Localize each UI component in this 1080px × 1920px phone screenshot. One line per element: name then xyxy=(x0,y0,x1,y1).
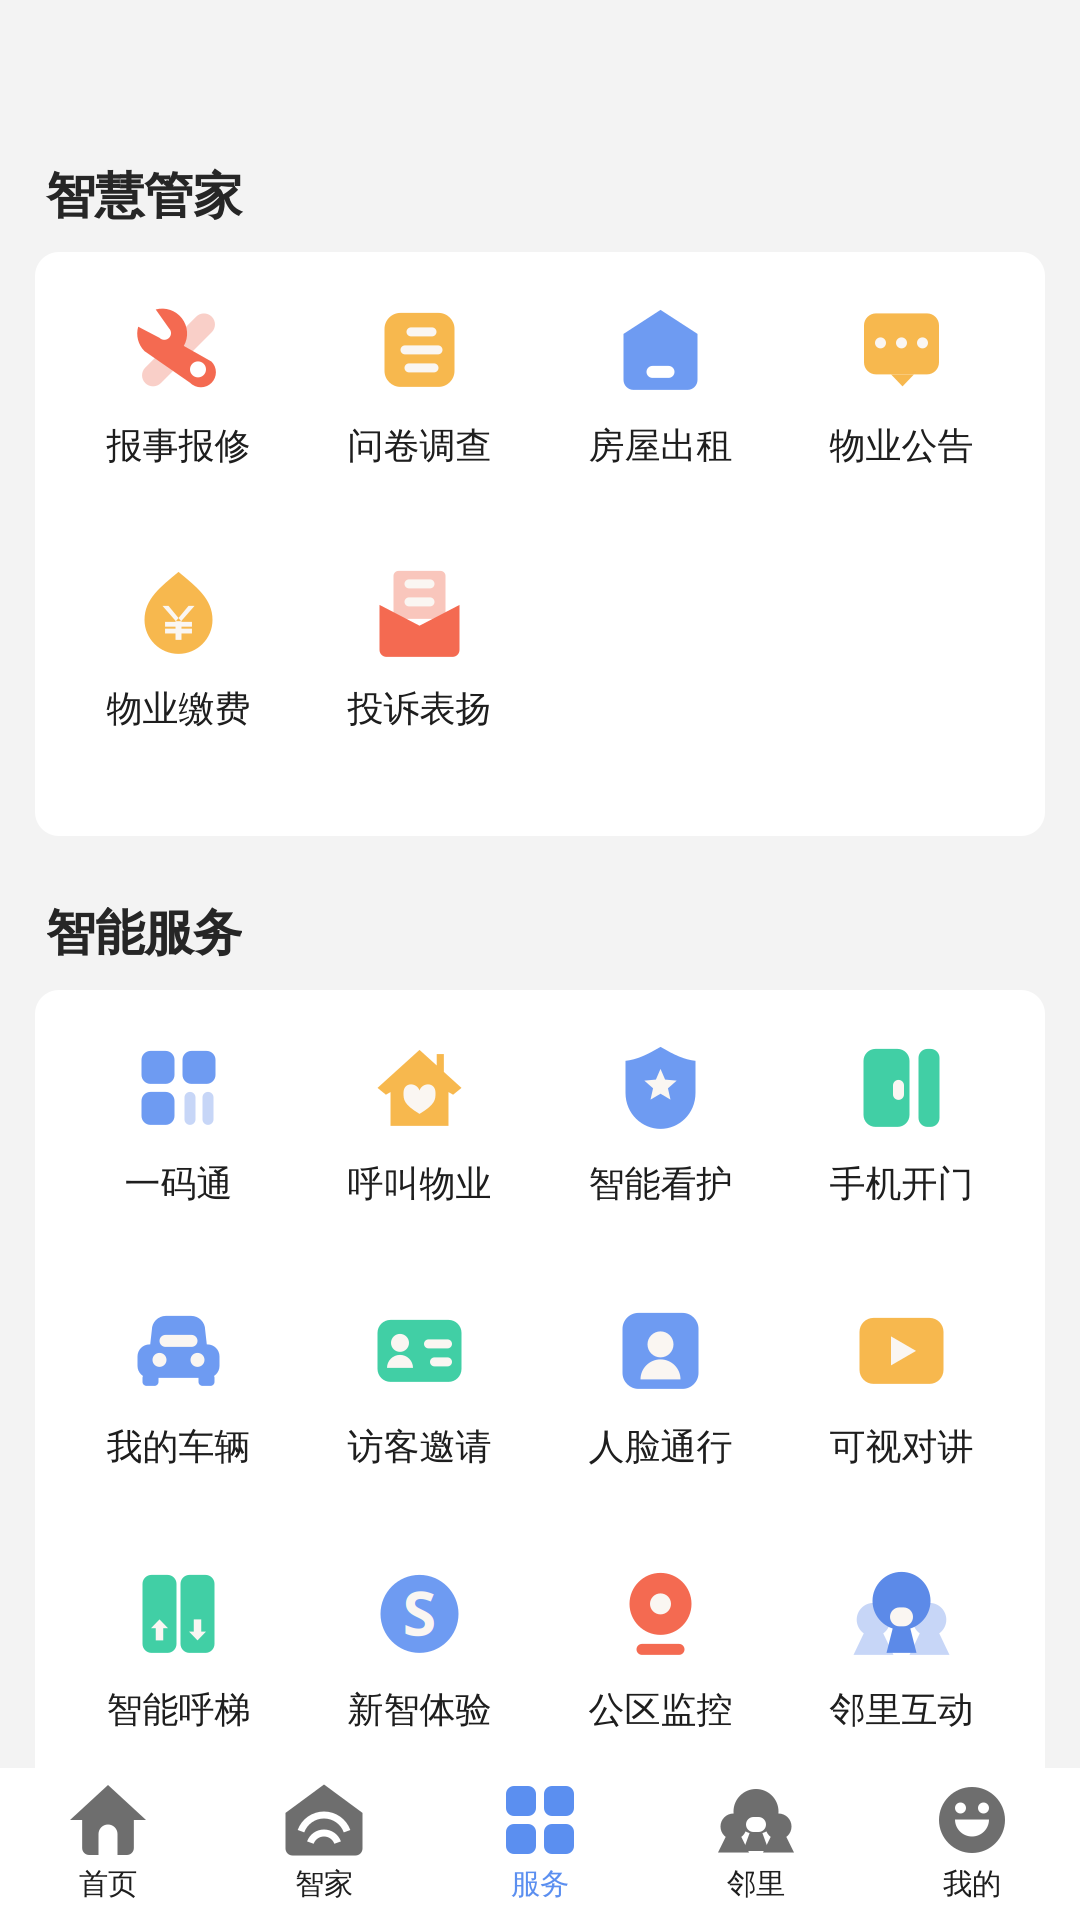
staticText: 我的车辆 xyxy=(106,1425,250,1469)
staticText: 投诉表扬 xyxy=(347,687,491,731)
staticText: 邻里互动 xyxy=(829,1688,973,1732)
button[interactable]: 智家 xyxy=(216,1768,432,1920)
staticText: 新智体验 xyxy=(347,1688,491,1732)
button[interactable]: 物业缴费 xyxy=(58,565,299,828)
button[interactable]: 报事报修 xyxy=(58,302,299,565)
staticText: 呼叫物业 xyxy=(347,1162,491,1206)
staticText: 可视对讲 xyxy=(829,1425,973,1469)
staticText: 智能看护 xyxy=(588,1162,732,1206)
button[interactable]: 邻里互动 xyxy=(781,1566,1022,1829)
staticText: 智慧管家 xyxy=(46,166,242,227)
button[interactable]: 人脸通行 xyxy=(540,1303,781,1566)
staticText: S xyxy=(402,1571,436,1653)
button[interactable]: 房屋出租 xyxy=(540,302,781,565)
button[interactable]: 呼叫物业 xyxy=(299,1040,540,1303)
button[interactable]: 一码通 xyxy=(58,1040,299,1303)
staticText: 房屋出租 xyxy=(588,424,732,468)
button[interactable]: 智能呼梯 xyxy=(58,1566,299,1829)
button[interactable]: 首页 xyxy=(0,1768,216,1920)
staticText: 我的 xyxy=(943,1866,1001,1902)
button[interactable]: 服务 xyxy=(432,1768,648,1920)
button[interactable]: 访客邀请 xyxy=(299,1303,540,1566)
button[interactable]: S xyxy=(299,1566,540,1829)
staticText: 一码通 xyxy=(124,1162,232,1206)
staticText: 访客邀请 xyxy=(347,1425,491,1469)
staticText: 智家 xyxy=(295,1866,353,1902)
button[interactable]: 投诉表扬 xyxy=(299,565,540,828)
button[interactable]: 我的车辆 xyxy=(58,1303,299,1566)
staticText: 问卷调查 xyxy=(347,424,491,468)
staticText: 智能服务 xyxy=(46,903,242,964)
button[interactable]: 公区监控 xyxy=(540,1566,781,1829)
button[interactable]: 手机开门 xyxy=(781,1040,1022,1303)
staticText: 公区监控 xyxy=(588,1688,732,1732)
staticText: 智能呼梯 xyxy=(106,1688,250,1732)
staticText: 物业公告 xyxy=(829,424,973,468)
staticText: 人脸通行 xyxy=(588,1425,732,1469)
staticText: 邻里 xyxy=(727,1866,785,1902)
staticText: 手机开门 xyxy=(829,1162,973,1206)
button[interactable]: 我的 xyxy=(864,1768,1080,1920)
staticText: 物业缴费 xyxy=(106,687,250,731)
staticText: 报事报修 xyxy=(106,424,250,468)
staticText: 首页 xyxy=(79,1866,137,1902)
button[interactable]: 可视对讲 xyxy=(781,1303,1022,1566)
button[interactable]: 问卷调查 xyxy=(299,302,540,565)
button[interactable]: 智能看护 xyxy=(540,1040,781,1303)
button[interactable]: 邻里 xyxy=(648,1768,864,1920)
staticText: 服务 xyxy=(511,1866,569,1902)
button[interactable]: 物业公告 xyxy=(781,302,1022,565)
